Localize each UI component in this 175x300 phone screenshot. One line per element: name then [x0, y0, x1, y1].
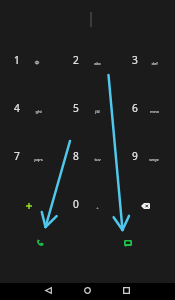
staticText: 7: [14, 149, 20, 163]
button[interactable]: 3: [118, 38, 175, 82]
staticText: 9: [132, 149, 138, 163]
staticText: 0: [73, 197, 79, 211]
button[interactable]: 2: [59, 38, 117, 82]
button[interactable]: Message: [106, 221, 150, 265]
staticText: 8: [73, 149, 79, 163]
button[interactable]: 4: [0, 86, 58, 130]
staticText: 2: [73, 53, 79, 67]
button[interactable]: 8: [59, 134, 117, 178]
staticText: tuv: [94, 157, 101, 163]
staticText: 1: [14, 53, 20, 67]
staticText: 6: [132, 101, 138, 115]
staticText: pqrs: [34, 157, 43, 163]
staticText: ghi: [35, 109, 42, 115]
staticText: 4: [14, 101, 20, 115]
button[interactable]: Recents: [113, 283, 140, 298]
button[interactable]: Backspace: [118, 182, 175, 226]
staticText: +: [96, 205, 99, 211]
button[interactable]: Call: [18, 222, 62, 266]
button[interactable]: 1: [0, 38, 58, 82]
staticText: 5: [73, 101, 79, 115]
button[interactable]: Back: [35, 283, 62, 298]
button[interactable]: Star: [0, 182, 58, 226]
button[interactable]: 0: [59, 182, 117, 226]
staticText: 3: [132, 53, 138, 67]
button[interactable]: 7: [0, 134, 58, 178]
button[interactable]: Home: [74, 283, 101, 298]
staticText: wxyz: [149, 157, 159, 163]
button[interactable]: 6: [118, 86, 175, 130]
staticText: abc: [94, 61, 101, 67]
button[interactable]: 9: [118, 134, 175, 178]
staticText: def: [151, 61, 158, 67]
staticText: mno: [150, 109, 159, 115]
button[interactable]: 5: [59, 86, 117, 130]
staticText: jkl: [95, 109, 100, 115]
